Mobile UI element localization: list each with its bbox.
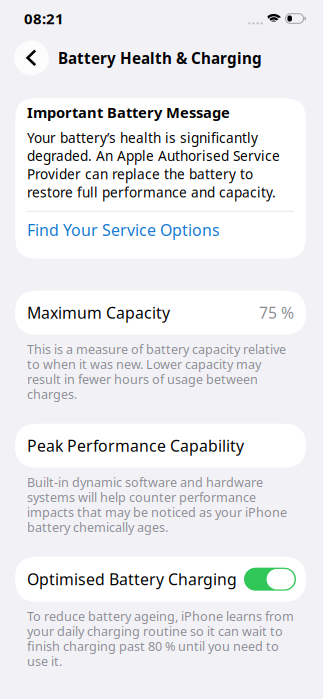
staticText: Important Battery Message [27,102,230,122]
staticText: 08:21 [24,8,64,29]
staticText: 75 % [259,302,294,323]
staticText: restore full performance and capacity. [27,183,276,201]
button[interactable]: Find Your Service Options [27,212,294,259]
staticText: Your battery’s health is significantly [27,128,258,147]
staticText: To reduce battery ageing, iPhone learns … [27,608,294,625]
staticText: degraded. An Apple Authorised Service [27,146,280,165]
staticText: your daily charging routine so it can wa… [27,623,283,640]
staticText: Battery Health & Charging [58,48,262,68]
staticText: Built-in dynamic software and hardware [27,474,263,491]
staticText: This is a measure of battery capacity re… [27,341,286,358]
staticText: Maximum Capacity [27,302,170,323]
button[interactable]: Back [14,40,49,75]
staticText: result in fewer hours of usage between [27,371,258,388]
staticText: to when it was new. Lower capacity may [27,356,261,373]
staticText: use it. [27,653,62,670]
staticText: systems will help counter performance [27,489,256,506]
staticText: impacts that may be noticed as your iPho… [27,504,287,521]
button[interactable]: Optimised Battery Charging [244,568,296,591]
staticText: Peak Performance Capability [27,435,244,456]
staticText: charges. [27,386,77,403]
staticText: finish charging past 80 % until you need… [27,638,279,655]
staticText: Optimised Battery Charging [27,568,237,590]
staticText: battery chemically ages. [27,519,168,536]
staticText: Provider can replace the battery to [27,165,253,183]
staticText: Find Your Service Options [27,219,220,240]
